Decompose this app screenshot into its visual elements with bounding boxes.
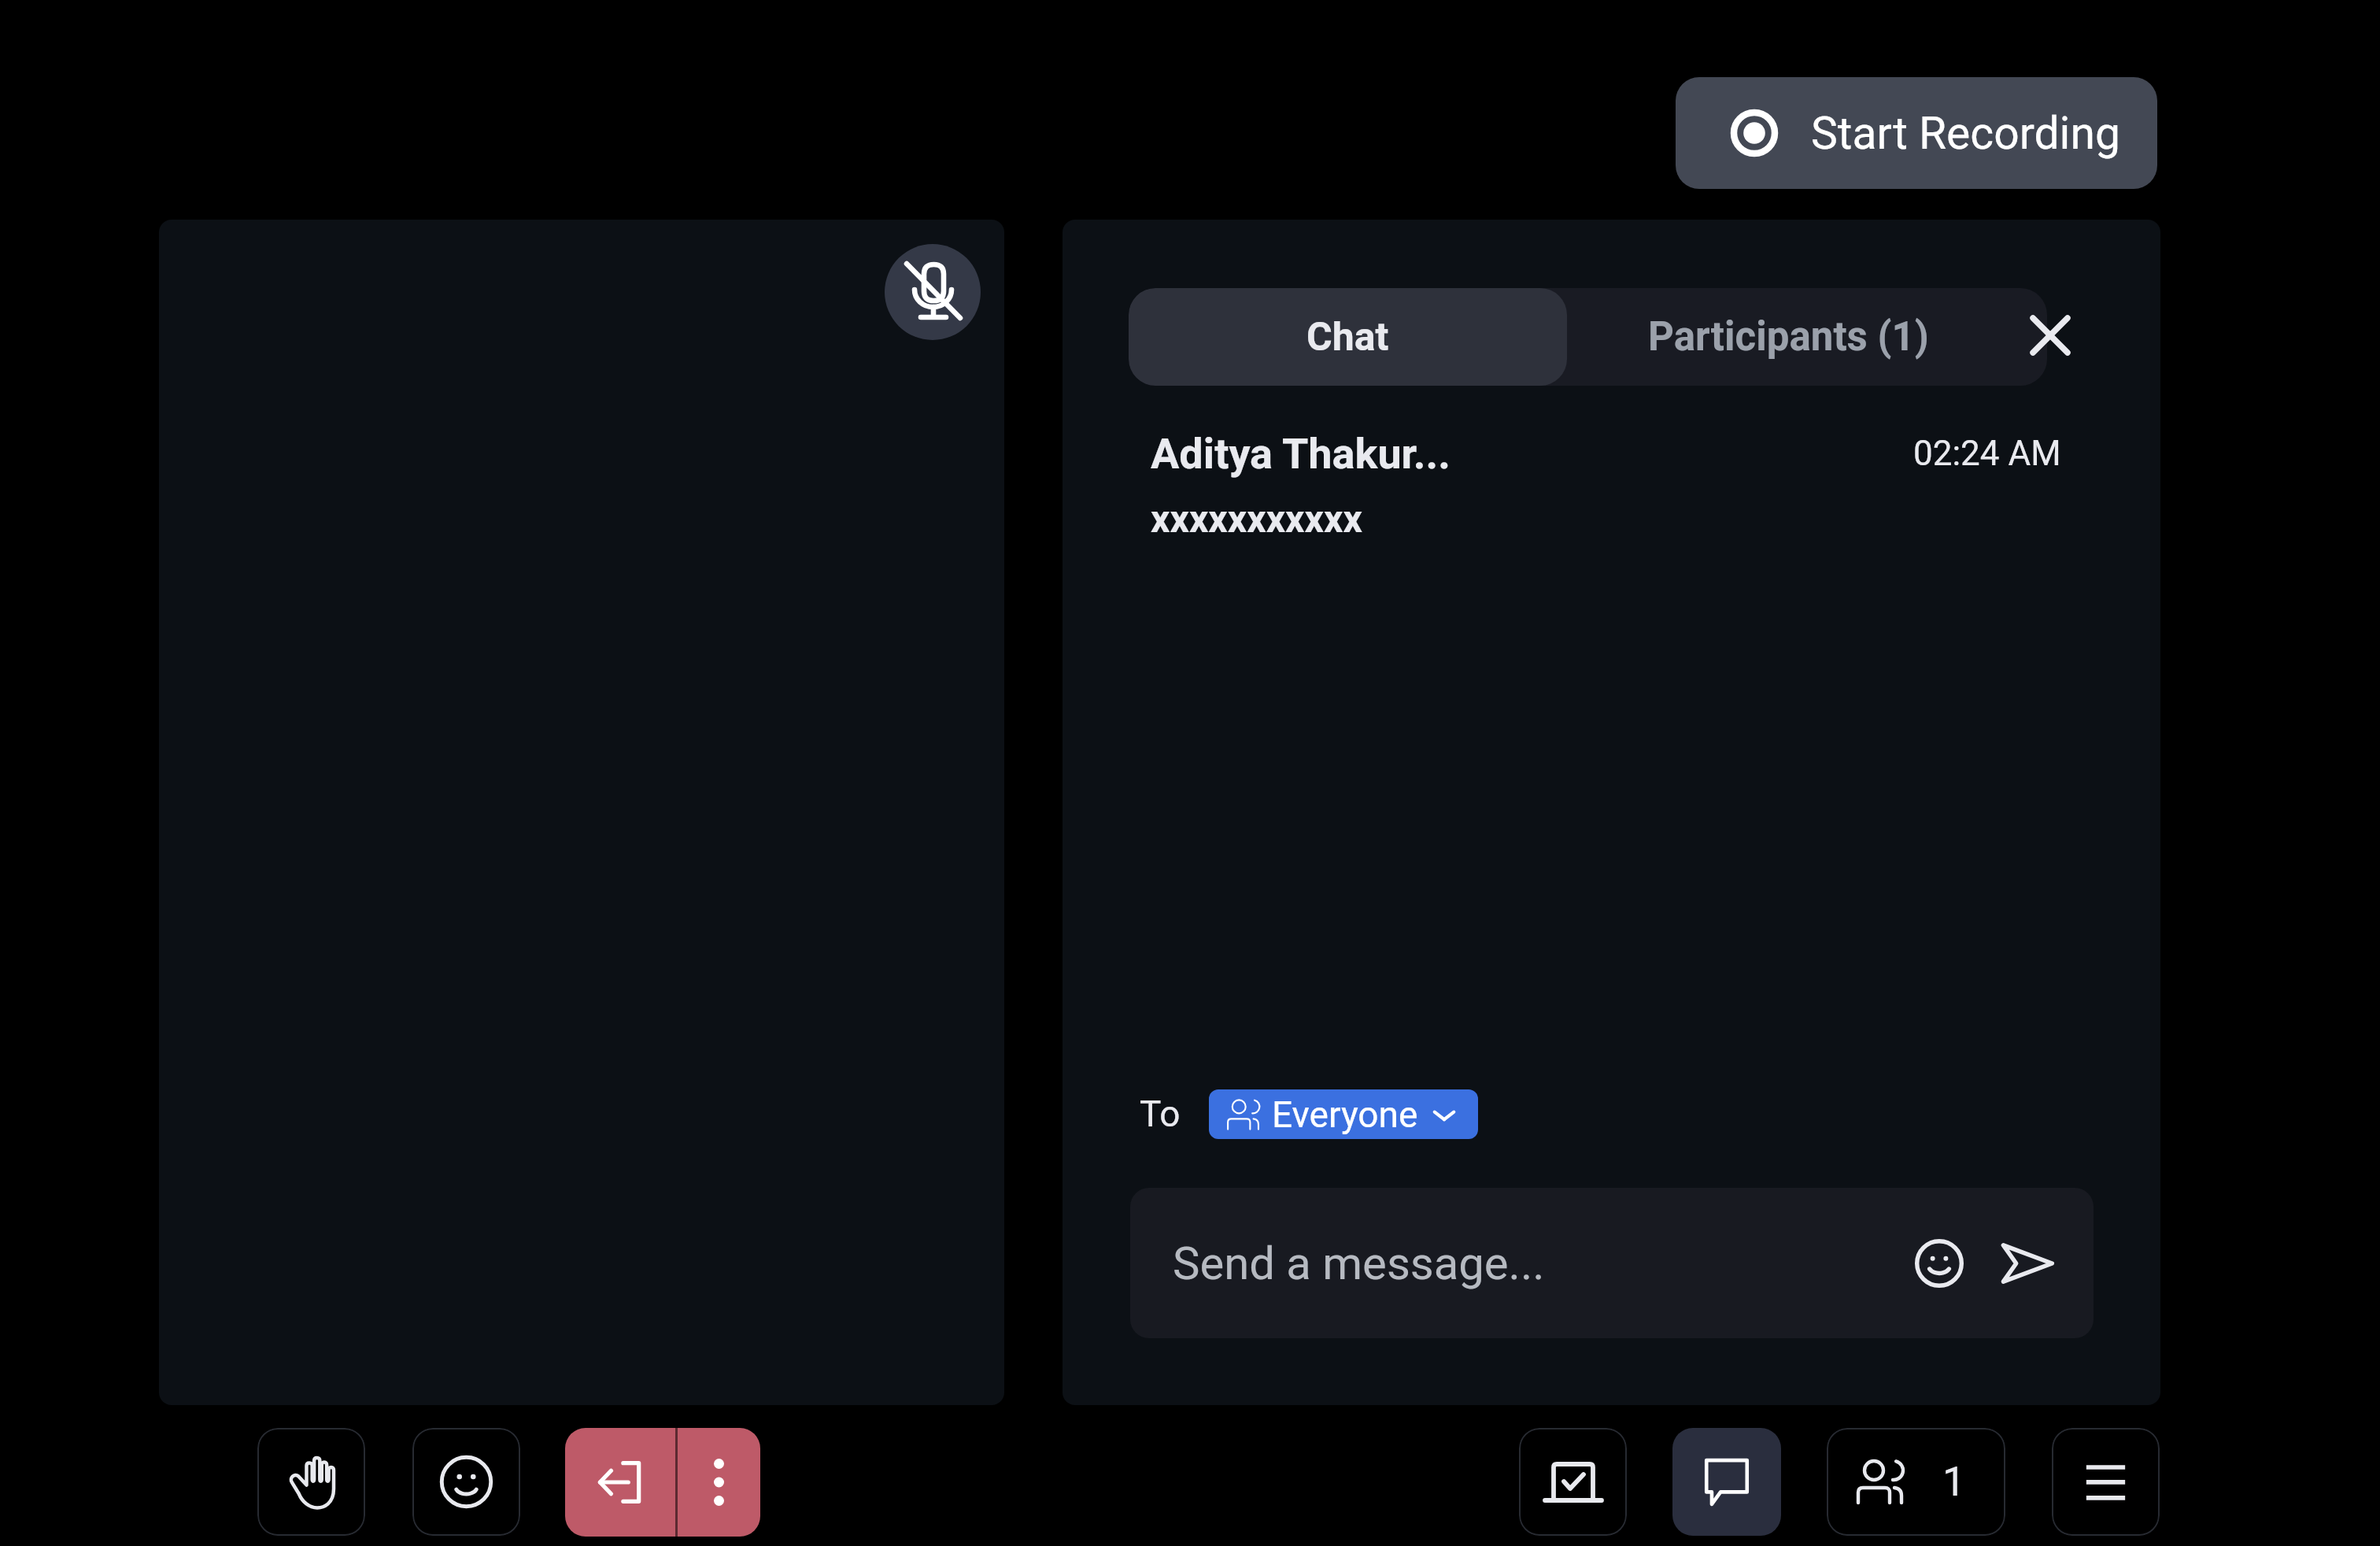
- staticText: To: [1140, 1093, 1181, 1135]
- staticText: Chat: [1306, 314, 1389, 361]
- staticText: xxxxxxxxxxx: [1151, 497, 1362, 541]
- staticText: Participants (1): [1648, 313, 1929, 361]
- button[interactable]: Everyone: [1209, 1089, 1478, 1139]
- button[interactable]: Close chat panel: [2019, 304, 2082, 367]
- button[interactable]: Participants: [1827, 1428, 2005, 1536]
- button[interactable]: Chat: [1129, 288, 1567, 386]
- staticText: Send a message...: [1173, 1237, 1545, 1290]
- button[interactable]: Send a message...: [1130, 1188, 2094, 1338]
- button[interactable]: Menu: [2052, 1428, 2160, 1536]
- staticText: Everyone: [1272, 1093, 1418, 1136]
- button[interactable]: Microphone muted: [885, 244, 981, 340]
- button[interactable]: Emoji: [1908, 1232, 1971, 1295]
- staticText: Aditya Thakur...: [1151, 429, 1451, 479]
- staticText: 1: [1942, 1458, 1966, 1506]
- button[interactable]: More options: [678, 1428, 760, 1537]
- button[interactable]: Raise hand: [257, 1428, 365, 1536]
- button[interactable]: Reactions: [412, 1428, 520, 1536]
- button[interactable]: Participants (1): [1567, 288, 2047, 386]
- button[interactable]: Polls: [1519, 1428, 1627, 1536]
- staticText: Start Recording: [1811, 107, 2120, 160]
- button[interactable]: Leave meeting: [565, 1428, 675, 1537]
- button[interactable]: Chat: [1672, 1428, 1781, 1536]
- button[interactable]: Start Recording: [1676, 77, 2157, 189]
- button[interactable]: Send: [1996, 1232, 2059, 1295]
- staticText: 02:24 AM: [1913, 433, 2061, 474]
